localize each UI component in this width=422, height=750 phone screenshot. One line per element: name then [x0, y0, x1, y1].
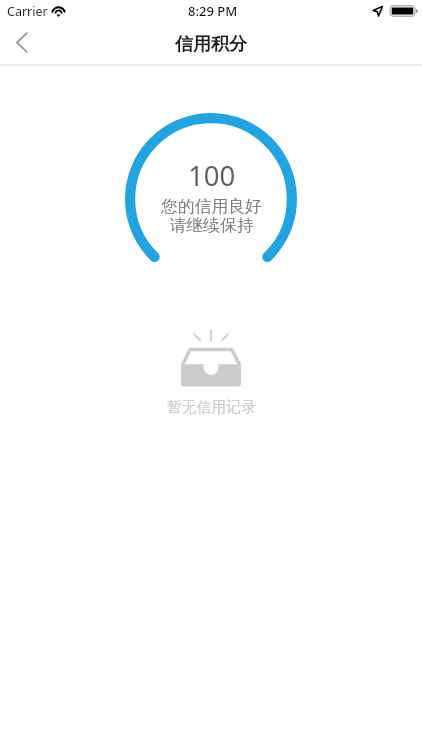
staticText: 您的信用良好 请继续保持 — [161, 196, 262, 236]
button[interactable]: 100 — [125, 113, 297, 285]
staticText: 100 — [188, 157, 236, 194]
staticText: Carrier — [7, 3, 48, 20]
staticText: 信用积分 — [175, 33, 247, 56]
other: No credit records — [181, 325, 241, 387]
button[interactable]: Back — [0, 23, 44, 67]
staticText: 暂无信用记录 — [167, 398, 256, 417]
staticText: 8:29 PM — [188, 2, 238, 20]
